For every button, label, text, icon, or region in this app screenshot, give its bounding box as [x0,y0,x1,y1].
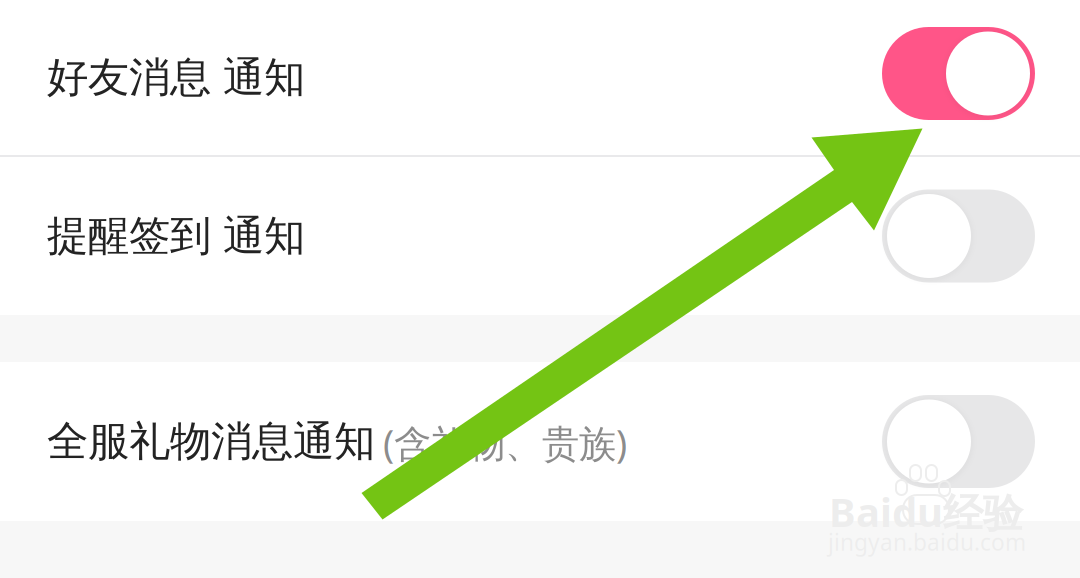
staticText: 全服礼物消息通知 [47,416,375,467]
button[interactable]: 好友消息 通知 [0,0,1080,155]
button[interactable]: 提醒签到 通知 [0,157,1080,315]
staticText: Baidu经验 [829,485,1023,538]
staticText: 好友消息 通知 [47,52,305,103]
staticText: 提醒签到 通知 [47,211,305,261]
staticText: jingyan.baidu.com [828,527,1026,557]
button[interactable]: 全服礼物消息通知 [0,362,1080,521]
staticText: (含礼物、贵族) [383,418,627,468]
